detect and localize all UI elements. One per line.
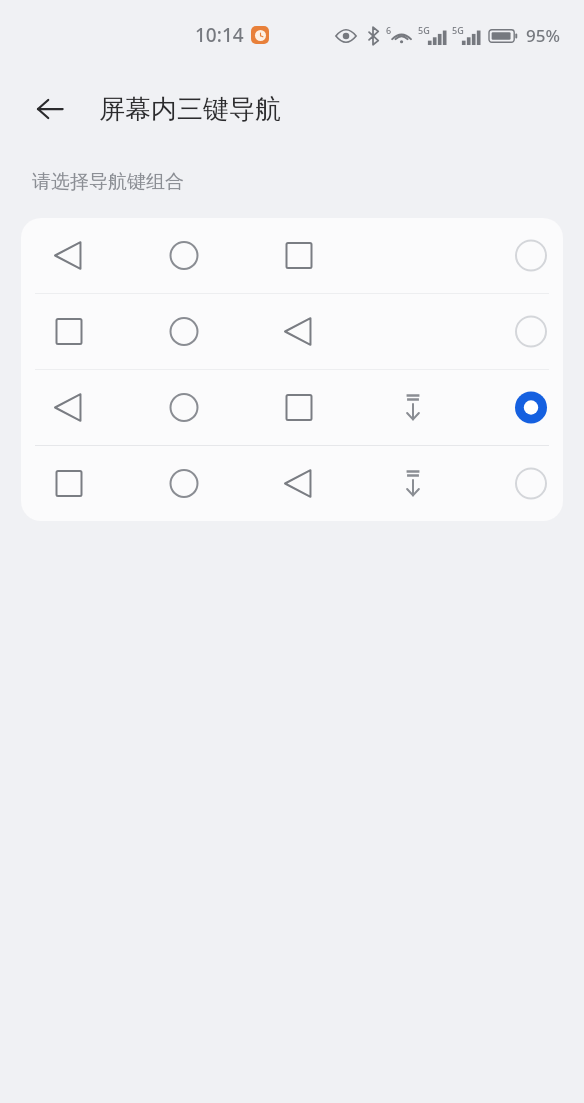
staticText: 5G: [418, 24, 430, 36]
button[interactable]: 导航键组合: [21, 294, 563, 369]
staticText: 5G: [452, 24, 464, 36]
staticText: 95%: [526, 24, 560, 47]
staticText: 请选择导航键组合: [32, 170, 184, 194]
button[interactable]: 已选中的导航键组合: [21, 370, 563, 445]
button[interactable]: 导航键组合: [21, 446, 563, 521]
staticText: 10:14: [195, 22, 244, 48]
staticText: 屏幕内三键导航: [99, 93, 281, 126]
staticText: 6: [386, 24, 392, 36]
button[interactable]: 返回: [22, 81, 78, 137]
button[interactable]: 导航键组合: [21, 218, 563, 293]
